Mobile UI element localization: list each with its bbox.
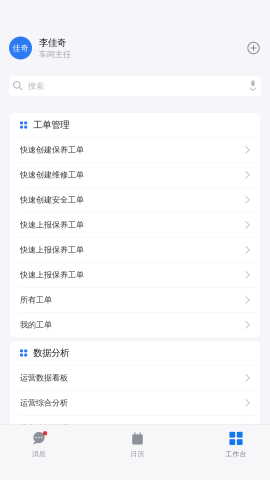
button[interactable]: 工作台 [209, 425, 263, 462]
button[interactable]: 消息 [12, 425, 66, 462]
button[interactable]: 新建 [243, 38, 263, 58]
staticText: 快速上报保养工单 [20, 220, 84, 230]
button[interactable]: 快速上报保养工单 [10, 263, 260, 287]
staticText: 车间主任 [39, 49, 71, 59]
button[interactable]: 快速上报保养工单 [10, 213, 260, 237]
staticText: 快速创建保养工单 [20, 145, 84, 155]
staticText: 消息 [32, 450, 46, 458]
button[interactable]: 所有工单 [10, 288, 260, 312]
staticText: 数据分析 [33, 347, 69, 359]
button[interactable]: 设备统计分析 [10, 416, 260, 440]
staticText: 工单管理 [33, 119, 69, 131]
staticText: 运营数据看板 [20, 373, 68, 383]
staticText: 设备统计分析 [20, 423, 68, 433]
staticText: 李佳奇 [39, 37, 66, 48]
staticText: 所有工单 [20, 295, 52, 305]
button[interactable]: 快速创建安全工单 [10, 188, 260, 212]
staticText: 搜索 [28, 81, 44, 91]
button[interactable]: 快速创建保养工单 [10, 138, 260, 162]
staticText: 快速创建安全工单 [20, 195, 84, 205]
button[interactable]: 快速创建维修工单 [10, 163, 260, 187]
staticText: 工作台 [225, 450, 246, 458]
staticText: 日历 [130, 450, 144, 458]
staticText: 佳奇 [12, 43, 28, 53]
button[interactable]: 运营综合分析 [10, 391, 260, 415]
staticText: 快速上报保养工单 [20, 270, 84, 280]
staticText: 快速创建维修工单 [20, 170, 84, 180]
button[interactable]: 运营数据看板 [10, 366, 260, 390]
staticText: 我的工单 [20, 320, 52, 330]
button[interactable]: 快速上报保养工单 [10, 238, 260, 262]
button[interactable]: 日历 [110, 425, 164, 462]
staticText: 快速上报保养工单 [20, 245, 84, 255]
button[interactable]: 搜索 [9, 76, 261, 96]
button[interactable]: 我的工单 [10, 313, 260, 337]
staticText: 运营综合分析 [20, 398, 68, 408]
